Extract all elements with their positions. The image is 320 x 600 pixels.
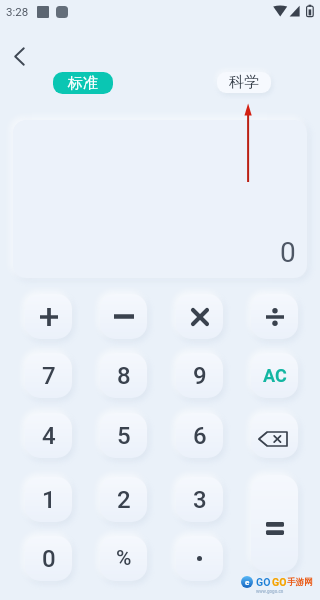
button[interactable]: 0 bbox=[25, 536, 72, 581]
staticText: 6 bbox=[193, 422, 207, 450]
staticText: GO bbox=[272, 576, 287, 588]
staticText: 8 bbox=[117, 362, 131, 390]
button[interactable]: 1 bbox=[25, 477, 72, 522]
button[interactable]: Equals bbox=[251, 475, 298, 572]
button[interactable]: 科学 bbox=[217, 72, 271, 93]
button[interactable]: Back bbox=[5, 42, 33, 70]
staticText: 2 bbox=[117, 486, 131, 514]
button[interactable]: 6 bbox=[176, 413, 223, 458]
button[interactable]: 8 bbox=[100, 353, 147, 398]
button[interactable]: 4 bbox=[25, 413, 72, 458]
staticText: 0 bbox=[42, 545, 56, 573]
staticText: 手游网 bbox=[287, 577, 313, 588]
staticText: 5 bbox=[117, 422, 131, 450]
staticText: 标准 bbox=[68, 74, 98, 93]
button[interactable]: 2 bbox=[100, 477, 147, 522]
button[interactable]: % bbox=[100, 536, 147, 581]
staticText: 1 bbox=[42, 486, 56, 514]
staticText: 3 bbox=[193, 486, 207, 514]
staticText: 3:28 bbox=[6, 5, 29, 18]
staticText: 9 bbox=[193, 362, 207, 390]
button[interactable]: 标准 bbox=[53, 72, 113, 94]
button[interactable]: 9 bbox=[176, 353, 223, 398]
button[interactable]: 5 bbox=[100, 413, 147, 458]
staticText: 7 bbox=[42, 362, 56, 390]
staticText: e bbox=[245, 578, 250, 587]
button[interactable]: 7 bbox=[25, 353, 72, 398]
staticText: % bbox=[116, 546, 132, 571]
button[interactable]: Minus bbox=[100, 294, 147, 339]
button[interactable]: AC bbox=[251, 353, 298, 398]
button[interactable] bbox=[176, 536, 223, 581]
button[interactable]: 3 bbox=[176, 477, 223, 522]
staticText: 4 bbox=[42, 422, 56, 450]
staticText: www.gogo.cn bbox=[256, 589, 284, 594]
staticText: GO bbox=[256, 576, 271, 588]
staticText: 0 bbox=[280, 236, 296, 269]
button[interactable]: Multiply bbox=[176, 294, 223, 339]
button[interactable]: Divide bbox=[251, 294, 298, 339]
staticText: AC bbox=[263, 365, 287, 386]
staticText: 科学 bbox=[229, 73, 259, 92]
button[interactable]: Delete bbox=[251, 413, 298, 458]
button[interactable]: Plus bbox=[25, 294, 72, 339]
